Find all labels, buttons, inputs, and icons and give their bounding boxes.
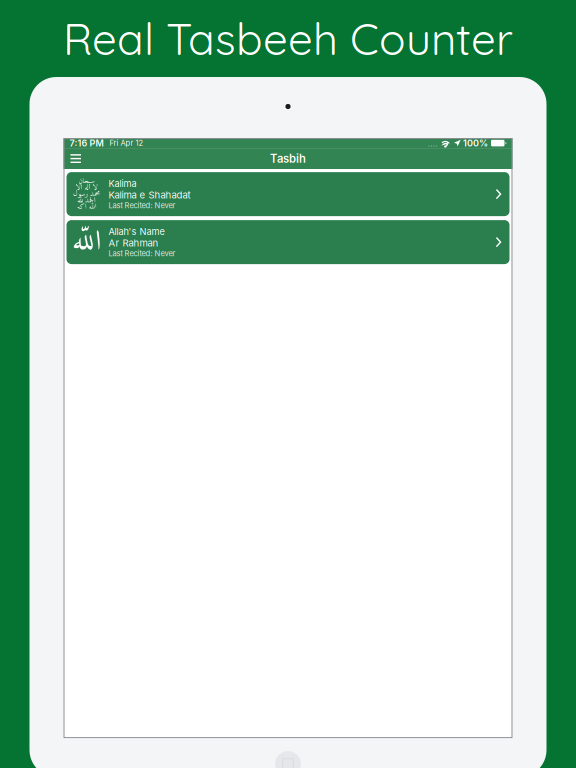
staticText: Ar Rahman bbox=[108, 237, 158, 249]
staticText: Allah's Name bbox=[108, 226, 164, 237]
staticText: Fri Apr 12 bbox=[109, 138, 143, 148]
button[interactable]: سبحان bbox=[66, 172, 509, 216]
staticText: سبحان bbox=[78, 175, 94, 188]
staticText: Last Recited: Never bbox=[108, 201, 175, 210]
staticText: Last Recited: Never bbox=[108, 249, 175, 258]
staticText: 100% bbox=[463, 138, 488, 149]
staticText: محمد رسول bbox=[72, 187, 99, 201]
staticText: Tasbih bbox=[270, 152, 306, 165]
button[interactable]: Menu bbox=[63, 149, 88, 168]
staticText: Real Tasbeeh Counter bbox=[63, 11, 513, 66]
staticText: الله bbox=[71, 216, 100, 268]
staticText: 7:16 PM bbox=[69, 138, 103, 149]
button[interactable]: الله bbox=[66, 220, 509, 264]
staticText: Kalima bbox=[108, 178, 136, 189]
staticText: Kalima e Shahadat bbox=[108, 189, 190, 201]
staticText: الله اكبر bbox=[75, 201, 96, 213]
staticText: لا اله الا bbox=[75, 181, 97, 194]
staticText: الحمد لله bbox=[76, 194, 95, 207]
